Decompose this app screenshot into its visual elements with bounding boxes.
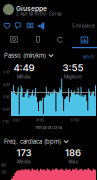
staticText: Passo (min/km) (4, 52, 46, 59)
staticText: 173 (16, 147, 31, 159)
staticText: Tempo di corsa (35, 125, 62, 130)
staticText: 4:00 (2, 82, 9, 87)
button[interactable]: Laps (48, 33, 72, 46)
button[interactable]: Like (1, 21, 12, 30)
button[interactable]: km/h (83, 54, 94, 59)
staticText: km/h (83, 54, 94, 59)
staticText: 186 (65, 147, 81, 159)
staticText: 2 Apr @ 10:00 · Corsa (16, 11, 61, 16)
button[interactable]: Map (2, 33, 26, 46)
button[interactable]: Comment (12, 21, 23, 30)
button[interactable]: Freq. cardiaca (bpm) (4, 138, 69, 145)
staticText: Migliore (64, 74, 82, 80)
button[interactable]: Photos (24, 21, 35, 30)
staticText: Freq. cardiaca (bpm) (4, 138, 61, 145)
staticText: 5:00 (2, 95, 9, 99)
staticText: 5 mi piace (72, 23, 95, 28)
staticText: Giuseppe (16, 5, 47, 13)
staticText: 180 (1, 163, 6, 167)
staticText: 37:00 (70, 118, 79, 122)
staticText: Max (68, 159, 77, 165)
staticText: 120 (1, 170, 6, 174)
staticText: Media (17, 74, 31, 80)
staticText: 18:00 (36, 118, 44, 122)
staticText: 4:49 (13, 62, 34, 74)
staticText: 6:00 (2, 107, 9, 112)
staticText: 3:30 (2, 70, 9, 74)
button[interactable]: Graphs (72, 33, 97, 48)
button[interactable]: Passo (min/km) (4, 52, 54, 59)
staticText: 3:00 (12, 118, 19, 122)
button[interactable]: Shoes (26, 33, 50, 46)
staticText: 7:15 (2, 119, 8, 124)
staticText: Media (17, 159, 31, 165)
button[interactable]: Share (35, 21, 46, 30)
staticText: 3:55 (62, 62, 83, 74)
